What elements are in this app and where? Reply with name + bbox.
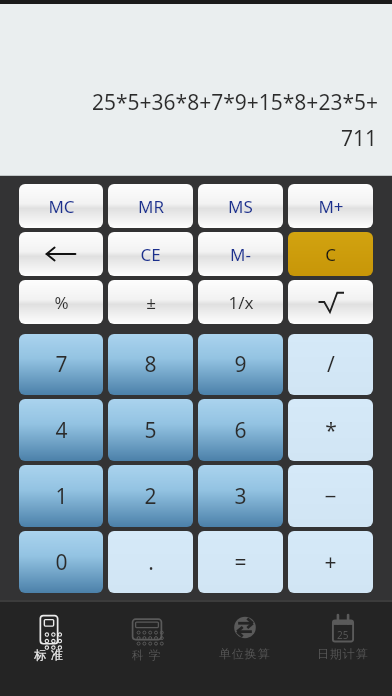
staticText: * (325, 416, 337, 445)
button[interactable]: 3 (198, 465, 283, 527)
button[interactable]: − (288, 465, 373, 527)
staticText: 4 (55, 416, 68, 445)
staticText: 1/x (228, 291, 254, 314)
button[interactable]: 科 学 (98, 602, 196, 662)
staticText: 7 (55, 350, 68, 379)
button[interactable]: 1/x (198, 280, 283, 324)
staticText: / (327, 350, 335, 379)
button[interactable]: C (288, 232, 373, 276)
button[interactable]: 8 (108, 334, 193, 395)
staticText: 1 (55, 482, 68, 511)
button[interactable]: 1 (19, 465, 103, 527)
button[interactable]: * (288, 399, 373, 461)
button[interactable]: / (288, 334, 373, 395)
staticText: MS (228, 195, 253, 218)
button[interactable]: Square root (288, 280, 373, 324)
button[interactable]: MS (198, 184, 283, 228)
button[interactable]: M- (198, 232, 283, 276)
staticText: 标 准 (34, 646, 64, 662)
staticText: − (324, 482, 337, 511)
button[interactable]: CE (108, 232, 193, 276)
staticText: + (324, 548, 337, 577)
button[interactable]: + (288, 531, 373, 593)
staticText: CE (140, 243, 161, 266)
button[interactable]: ± (108, 280, 193, 324)
staticText: MC (48, 195, 75, 218)
staticText: % (54, 291, 69, 314)
button[interactable]: 4 (19, 399, 103, 461)
button[interactable]: 标 准 (0, 602, 98, 662)
staticText: 8 (144, 350, 157, 379)
staticText: M+ (318, 195, 344, 218)
staticText: . (148, 548, 154, 577)
staticText: 3 (234, 482, 247, 511)
button[interactable]: % (19, 280, 103, 324)
staticText: C (325, 243, 336, 266)
button[interactable]: 2 (108, 465, 193, 527)
staticText: 25*5+36*8+7*9+15*8+23*5+ (91, 88, 378, 117)
button[interactable]: 25 (294, 602, 392, 661)
staticText: 6 (234, 416, 247, 445)
staticText: 711 (341, 124, 378, 153)
button[interactable]: 5 (108, 399, 193, 461)
button[interactable]: MC (19, 184, 103, 228)
staticText: 0 (55, 548, 68, 577)
button[interactable]: 6 (198, 399, 283, 461)
button[interactable]: MR (108, 184, 193, 228)
staticText: 单位换算 (219, 646, 271, 661)
staticText: 25 (337, 628, 349, 642)
button[interactable]: 7 (19, 334, 103, 395)
button[interactable]: 0 (19, 531, 103, 593)
staticText: MR (138, 195, 164, 218)
staticText: M- (230, 243, 251, 266)
button[interactable]: = (198, 531, 283, 593)
button[interactable]: 单位换算 (196, 602, 294, 661)
staticText: ± (146, 291, 156, 314)
staticText: 9 (234, 350, 247, 379)
button[interactable]: 9 (198, 334, 283, 395)
staticText: = (234, 548, 247, 577)
staticText: 5 (144, 416, 157, 445)
staticText: 日期计算 (317, 646, 369, 661)
button[interactable]: . (108, 531, 193, 593)
button[interactable]: Backspace (19, 232, 103, 276)
staticText: 2 (144, 482, 157, 511)
staticText: 科 学 (132, 646, 162, 662)
button[interactable]: M+ (288, 184, 373, 228)
